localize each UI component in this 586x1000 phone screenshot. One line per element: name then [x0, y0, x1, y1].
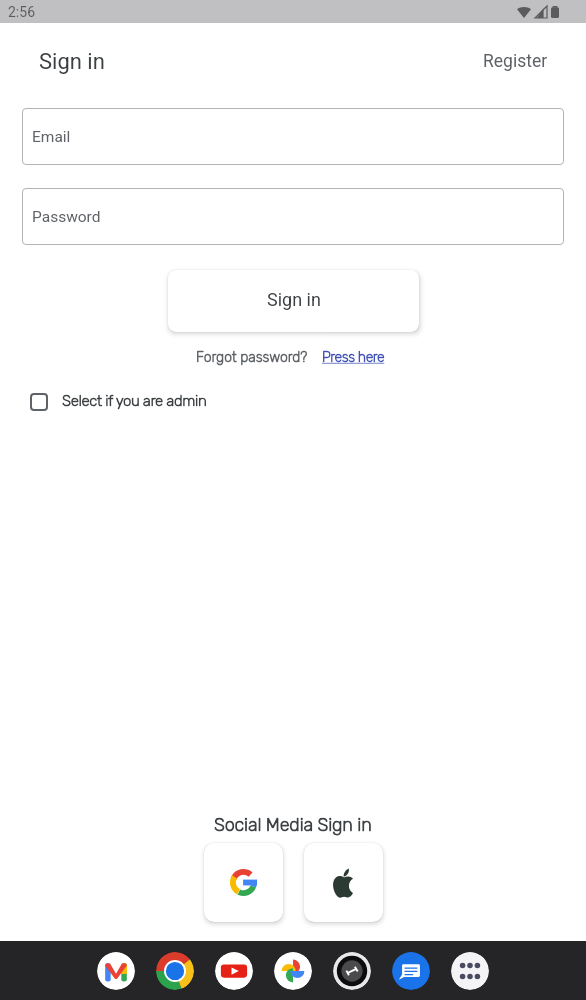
staticText: Sign in [39, 49, 105, 75]
staticText: Select if you are admin [62, 392, 207, 410]
staticText: Press here [322, 349, 385, 366]
staticText: 2:56 [8, 4, 35, 20]
button[interactable]: Sign in with Apple [304, 843, 383, 922]
staticText: Forgot password? [196, 349, 308, 366]
button[interactable]: Register [483, 51, 548, 72]
staticText: Social Media Sign in [214, 814, 372, 835]
staticText: Password [32, 208, 101, 226]
staticText: Email [32, 128, 71, 146]
button[interactable]: Photos [274, 952, 312, 990]
button[interactable]: Press here [322, 349, 385, 366]
button[interactable]: Password [22, 188, 564, 245]
button[interactable]: All apps [451, 952, 489, 990]
staticText: Sign in [267, 289, 321, 310]
button[interactable]: Chrome [156, 952, 194, 990]
button[interactable]: YouTube [215, 952, 253, 990]
button[interactable]: Camera [333, 952, 371, 990]
button[interactable]: Select if you are admin [30, 393, 586, 411]
button[interactable]: Email [22, 108, 564, 165]
staticText: Register [483, 51, 548, 72]
button[interactable]: Gmail [97, 952, 135, 990]
button[interactable]: Messages [392, 952, 430, 990]
button[interactable]: Sign in with Google [204, 843, 283, 922]
button[interactable]: Sign in [168, 270, 419, 332]
